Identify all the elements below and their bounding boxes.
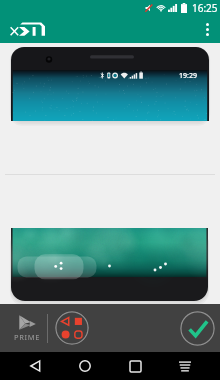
button[interactable]: PRIME [10, 308, 44, 348]
button[interactable]: 19:29 [11, 47, 209, 121]
button[interactable]: More options [194, 16, 220, 42]
button[interactable]: Done [180, 311, 215, 346]
button[interactable]: Home [70, 352, 100, 380]
button[interactable]: Shapes [55, 311, 89, 345]
button[interactable]: App logo [10, 16, 45, 42]
button[interactable]: Menu [170, 352, 200, 380]
button[interactable]: Recents [120, 352, 150, 380]
staticText: PRIME [14, 332, 41, 342]
button[interactable]: Back [20, 352, 50, 380]
staticText: 16:25 [192, 1, 218, 15]
staticText: 19:29 [179, 71, 197, 81]
button[interactable] [11, 228, 208, 301]
